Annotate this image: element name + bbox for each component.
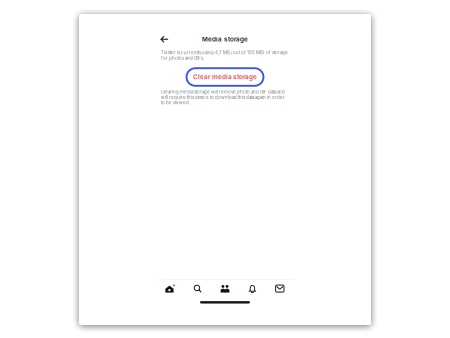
staticText: Twitter is currently using 4,7 MB (out o… xyxy=(161,50,288,61)
staticText: Media storage xyxy=(202,35,248,43)
button[interactable]: Communities xyxy=(211,284,239,293)
button[interactable]: Search xyxy=(184,284,211,293)
button[interactable]: Home xyxy=(156,284,184,293)
button[interactable]: Direct messages xyxy=(266,285,293,292)
button[interactable]: Notifications xyxy=(239,284,266,293)
button[interactable]: Clear media storage xyxy=(186,68,263,86)
staticText: Clearing media storage will remove photo… xyxy=(161,89,285,105)
staticText: Clear media storage xyxy=(193,73,257,81)
button[interactable]: Back xyxy=(156,31,174,47)
